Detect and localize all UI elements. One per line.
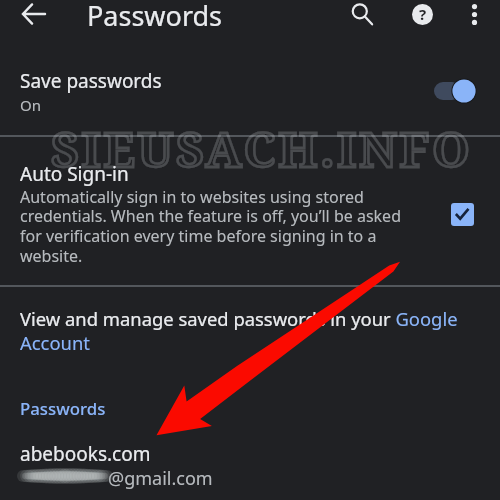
staticText: @gmail.com xyxy=(108,466,213,491)
staticText: Auto Sign-in xyxy=(20,161,129,187)
button[interactable]: More options xyxy=(452,0,496,36)
button[interactable]: Save passwords xyxy=(0,56,500,136)
staticText: On xyxy=(20,95,41,115)
button[interactable]: Save passwords toggle xyxy=(426,72,484,116)
button[interactable]: Auto Sign-in enabled xyxy=(450,202,474,226)
staticText: Passwords xyxy=(87,0,223,34)
button[interactable]: Search xyxy=(340,0,384,36)
staticText: SIEUSACH.INFO xyxy=(51,116,473,181)
staticText: View and manage saved passwords in your … xyxy=(20,306,468,355)
staticText: Save passwords xyxy=(20,68,162,94)
button[interactable]: View and manage saved passwords in your … xyxy=(20,306,468,355)
button[interactable]: Passwords xyxy=(20,397,106,420)
staticText: Automatically sign in to websites using … xyxy=(20,186,412,267)
staticText: abebooks.com xyxy=(20,441,151,467)
staticText: ? xyxy=(419,4,427,24)
button[interactable]: abebooks.com xyxy=(0,437,500,500)
button[interactable]: Back xyxy=(12,0,56,36)
button[interactable]: Help xyxy=(400,0,444,36)
